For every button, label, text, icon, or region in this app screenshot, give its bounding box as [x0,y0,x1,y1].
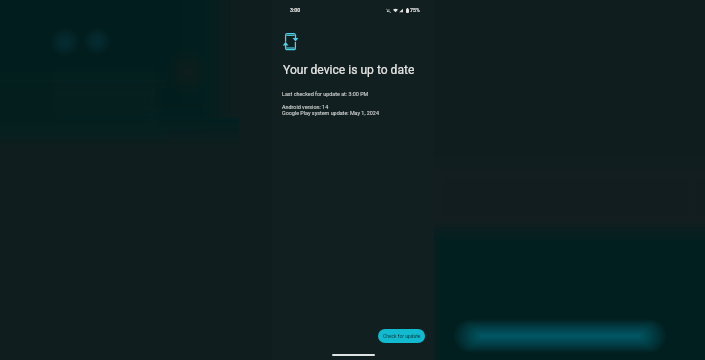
staticText: Android version: 14 [282,104,329,110]
other: System update [281,31,300,52]
staticText: Google Play system update: May 1, 2024 [282,110,379,116]
staticText: Check for update [383,333,421,339]
button[interactable]: Check for update [378,329,425,343]
staticText: Last checked for update at: 3:00 PM [282,91,369,97]
staticText: 3:00 [290,7,301,13]
staticText: 75% [410,7,420,13]
staticText: Your device is up to date [283,63,415,77]
